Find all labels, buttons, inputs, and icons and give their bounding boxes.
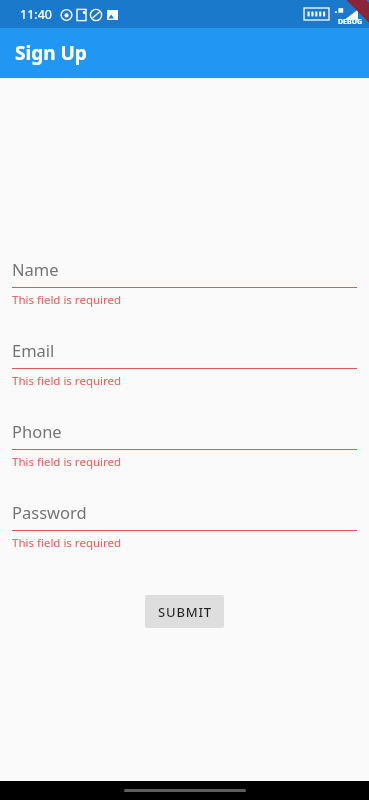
staticText: This field is required <box>12 454 122 470</box>
staticText: 11:40 <box>20 6 52 23</box>
staticText: Password <box>12 501 87 523</box>
other: Signal strength <box>335 7 358 21</box>
staticText: SUBMIT <box>158 603 212 621</box>
staticText: Name <box>12 258 59 280</box>
staticText: This field is required <box>12 373 122 389</box>
button[interactable]: Password <box>0 494 369 575</box>
other: Notifications <box>60 8 122 22</box>
button[interactable]: Phone <box>0 413 369 494</box>
staticText: This field is required <box>12 292 122 308</box>
staticText: Email <box>12 339 55 361</box>
staticText: Phone <box>12 420 62 442</box>
staticText: Sign Up <box>15 40 87 66</box>
button[interactable]: Email <box>0 332 369 413</box>
button[interactable]: SUBMIT <box>145 595 224 628</box>
staticText: DEBUG <box>338 17 363 27</box>
button[interactable]: Name <box>0 251 369 332</box>
other: VoLTE <box>304 8 329 20</box>
staticText: This field is required <box>12 535 122 551</box>
